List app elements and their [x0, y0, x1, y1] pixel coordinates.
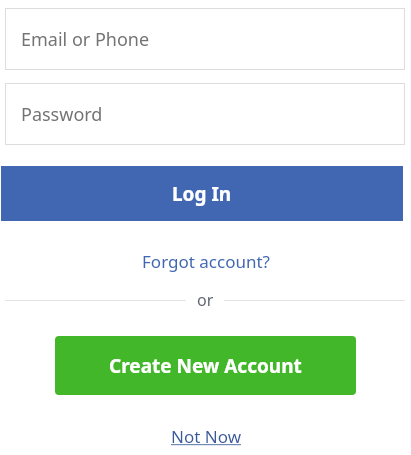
button[interactable]: Email or Phone — [5, 8, 405, 70]
button[interactable]: Create New Account — [55, 336, 356, 395]
button[interactable]: Not Now — [0, 421, 411, 451]
button[interactable]: Forgot account? — [0, 246, 411, 276]
button[interactable]: Log In — [1, 166, 403, 221]
staticText: Not Now — [171, 425, 241, 448]
staticText: Password — [21, 102, 103, 127]
staticText: Log In — [172, 181, 232, 207]
staticText: or — [197, 289, 214, 311]
staticText: Email or Phone — [21, 27, 150, 52]
button[interactable]: Password — [5, 83, 405, 145]
staticText: Create New Account — [109, 353, 302, 379]
staticText: Forgot account? — [142, 250, 270, 273]
